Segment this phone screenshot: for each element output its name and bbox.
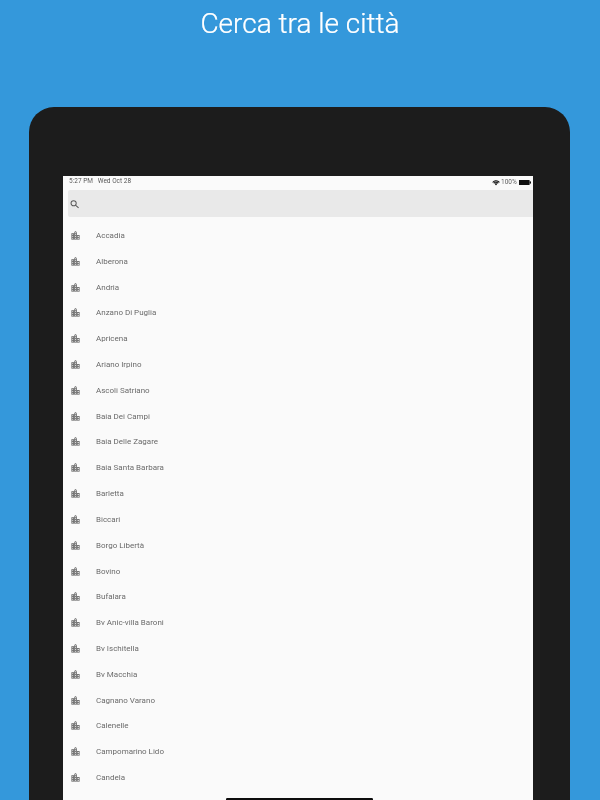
staticText: 5:27 PM Wed Oct 28 (69, 177, 132, 185)
button[interactable]: Andria (63, 274, 533, 300)
staticText: Alberona (96, 257, 128, 266)
button[interactable]: Bufalara (63, 583, 533, 609)
staticText: Baia Delle Zagare (96, 437, 159, 446)
staticText: Bv Macchia (96, 670, 138, 679)
staticText: Accadia (96, 231, 125, 240)
button[interactable]: Bv Ischitella (63, 635, 533, 661)
button[interactable]: Bovino (63, 558, 533, 584)
other: Search (69, 198, 81, 210)
staticText: 100% (501, 178, 517, 186)
button[interactable]: Baia Dei Campi (63, 403, 533, 429)
button[interactable]: Cagnano Varano (63, 687, 533, 713)
staticText: Baia Dei Campi (96, 412, 151, 421)
button[interactable]: Baia Delle Zagare (63, 428, 533, 454)
staticText: Bv Anic-villa Baroni (96, 618, 164, 627)
button[interactable]: Biccari (63, 506, 533, 532)
button[interactable]: Alberona (63, 248, 533, 274)
button[interactable]: Campomarino Lido (63, 738, 533, 764)
button[interactable]: Ariano Irpino (63, 351, 533, 377)
button[interactable]: Borgo Libertà (63, 532, 533, 558)
staticText: Calenelle (96, 721, 129, 730)
button[interactable]: Apricena (63, 325, 533, 351)
staticText: Baia Santa Barbara (96, 463, 164, 472)
button[interactable]: Bv Anic-villa Baroni (63, 609, 533, 635)
button[interactable]: Accadia (63, 222, 533, 248)
staticText: Campomarino Lido (96, 747, 164, 756)
button[interactable]: Search (68, 190, 533, 217)
button[interactable]: Candela (63, 764, 533, 790)
staticText: Apricena (96, 334, 128, 343)
staticText: Borgo Libertà (96, 541, 145, 550)
staticText: Anzano Di Puglia (96, 308, 157, 317)
staticText: Candela (96, 773, 126, 782)
staticText: Ariano Irpino (96, 360, 142, 369)
button[interactable]: Ascoli Satriano (63, 377, 533, 403)
staticText: Bufalara (96, 592, 126, 601)
staticText: Ascoli Satriano (96, 386, 150, 395)
button[interactable]: Barletta (63, 480, 533, 506)
staticText: Barletta (96, 489, 124, 498)
staticText: Andria (96, 283, 120, 292)
button[interactable]: Calenelle (63, 712, 533, 738)
staticText: Cerca tra le città (0, 7, 600, 40)
staticText: Bovino (96, 567, 121, 576)
button[interactable]: Anzano Di Puglia (63, 299, 533, 325)
staticText: Bv Ischitella (96, 644, 139, 653)
button[interactable]: Baia Santa Barbara (63, 454, 533, 480)
staticText: Cagnano Varano (96, 696, 155, 705)
button[interactable]: Bv Macchia (63, 661, 533, 687)
staticText: Biccari (96, 515, 121, 524)
